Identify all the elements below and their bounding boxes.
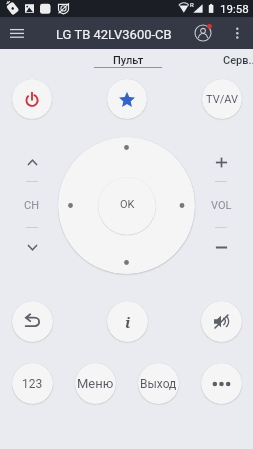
button[interactable]: TV/AV (202, 79, 242, 119)
button[interactable]: Channel down (12, 237, 52, 258)
button[interactable]: Volume up (201, 152, 241, 173)
staticText: LG TB 42LV3600-CB (56, 27, 172, 42)
staticText: i (125, 312, 131, 332)
button[interactable]: More (201, 363, 242, 404)
staticText: R (190, 1, 194, 8)
button[interactable]: Выход (138, 363, 179, 404)
button[interactable]: 123 (12, 363, 53, 404)
button[interactable]: Favorite (107, 79, 147, 119)
staticText: VOL (211, 199, 232, 212)
staticText: Серв... (223, 54, 253, 67)
staticText: CH (24, 199, 40, 212)
button[interactable]: OK (98, 177, 156, 235)
button[interactable]: Navigation menu (0, 17, 34, 49)
button[interactable]: Back (12, 301, 53, 342)
staticText: Пульт (113, 54, 144, 67)
button[interactable]: Пульт (94, 49, 162, 68)
button[interactable]: Account (189, 19, 217, 47)
button[interactable]: Меню (75, 363, 116, 404)
staticText: 123 (22, 377, 43, 391)
button[interactable]: Channel up (12, 152, 52, 173)
staticText: TV/AV (206, 93, 238, 106)
button[interactable]: More options (227, 22, 249, 44)
staticText: OK (120, 198, 135, 211)
staticText: 19:58 (220, 2, 249, 15)
button[interactable]: Volume down (201, 237, 241, 258)
button[interactable]: i (107, 301, 148, 342)
staticText: Выход (140, 377, 177, 391)
button[interactable]: Mute (201, 301, 242, 342)
staticText: Меню (77, 376, 114, 391)
button[interactable]: Серв... (198, 49, 253, 68)
button[interactable]: Power (12, 79, 52, 119)
